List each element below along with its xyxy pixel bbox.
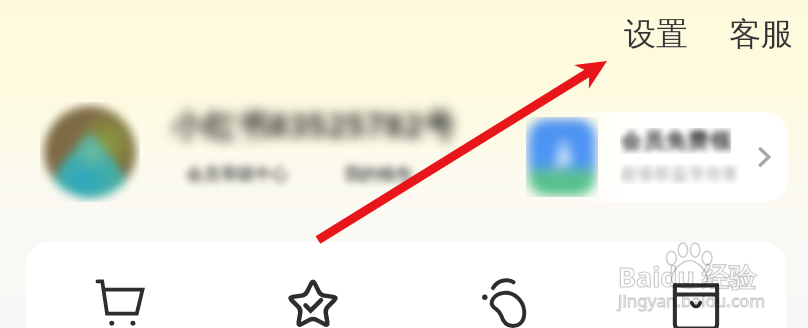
button[interactable]: Shopping cart [96, 279, 144, 327]
button[interactable]: Profile avatar [40, 102, 140, 202]
staticText: 会员等级中心 [186, 164, 288, 185]
button[interactable]: 会员免费领 [496, 112, 788, 202]
staticText: 设置 [624, 14, 688, 54]
staticText: 会员免费领 [620, 128, 731, 154]
button[interactable]: Favorites [287, 277, 339, 328]
button[interactable]: Browsing history [480, 278, 528, 326]
button[interactable]: 设置 [622, 10, 690, 58]
staticText: 客服 [729, 14, 793, 54]
staticText: 超值权益等你拿 [620, 164, 739, 184]
button[interactable]: Orders [672, 282, 720, 328]
staticText: jingyan.baidu.com [618, 289, 766, 312]
button[interactable]: 客服 [727, 10, 795, 58]
staticText: 我的钱包 [344, 164, 412, 185]
button[interactable]: 小红书83525782号 [160, 96, 500, 152]
staticText: Baidu 经验 [618, 258, 756, 295]
staticText: 小红书83525782号 [171, 103, 457, 147]
